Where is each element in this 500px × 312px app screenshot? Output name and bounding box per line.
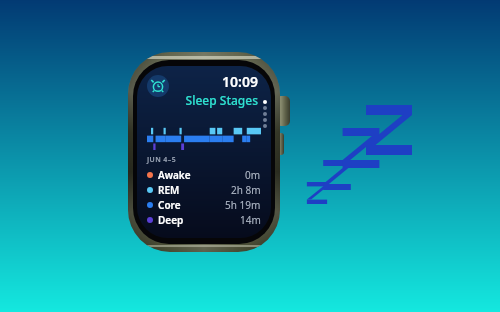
other: Side Button (277, 133, 284, 155)
staticText: Core (158, 198, 181, 212)
staticText: Awake (158, 168, 191, 182)
staticText: 14m (240, 213, 261, 227)
other: Digital Crown (276, 96, 290, 126)
button[interactable]: Alarm (147, 75, 169, 97)
staticText: 2h 8m (231, 183, 261, 197)
staticText: Sleep Stages (185, 92, 258, 108)
button[interactable]: Core (147, 197, 261, 212)
staticText: 0m (245, 168, 261, 182)
staticText: 5h 19m (225, 198, 261, 212)
button[interactable]: REM (147, 182, 261, 197)
staticText: Deep (158, 213, 184, 227)
staticText: REM (158, 183, 180, 197)
button[interactable]: Awake (147, 167, 261, 182)
button[interactable]: Deep (147, 212, 261, 227)
staticText: JUN 4–5 (147, 155, 177, 165)
staticText: 10:09 (222, 72, 258, 91)
